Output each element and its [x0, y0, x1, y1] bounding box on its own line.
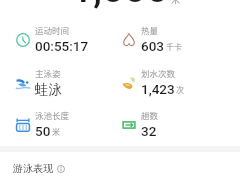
- other: Stroke count: [122, 76, 136, 90]
- staticText: 次: [176, 84, 184, 96]
- staticText: 千卡: [166, 41, 182, 53]
- staticText: 603: [141, 38, 165, 54]
- button[interactable]: Pool length: [16, 110, 120, 140]
- other: Info: [57, 165, 65, 173]
- button[interactable]: 游泳表现: [13, 162, 65, 175]
- staticText: 50: [35, 123, 51, 139]
- staticText: 划水次数: [141, 67, 176, 79]
- staticText: 32: [141, 123, 157, 139]
- staticText: 趟数: [141, 109, 159, 121]
- staticText: 热量: [141, 24, 159, 36]
- button[interactable]: Duration: [16, 25, 120, 55]
- staticText: 蛙泳: [35, 81, 62, 98]
- staticText: 主泳姿: [35, 67, 61, 79]
- staticText: 1,423: [141, 81, 175, 97]
- other: Pool length: [16, 118, 30, 132]
- staticText: 00:55:17: [35, 38, 89, 54]
- other: Calories: [122, 33, 136, 47]
- button[interactable]: Laps: [122, 110, 226, 140]
- other: Duration: [16, 33, 30, 47]
- staticText: 游泳表现: [13, 162, 53, 175]
- other: Main stroke: [16, 76, 30, 90]
- button[interactable]: Calories: [122, 25, 226, 55]
- other: Laps: [122, 118, 136, 132]
- staticText: 米: [171, 0, 181, 6]
- staticText: 泳池长度: [35, 109, 70, 121]
- staticText: 米: [52, 126, 60, 138]
- staticText: 1,000: [71, 0, 169, 11]
- button[interactable]: Stroke count: [122, 68, 226, 98]
- staticText: 运动时间: [35, 24, 70, 36]
- button[interactable]: Main stroke: [16, 68, 120, 98]
